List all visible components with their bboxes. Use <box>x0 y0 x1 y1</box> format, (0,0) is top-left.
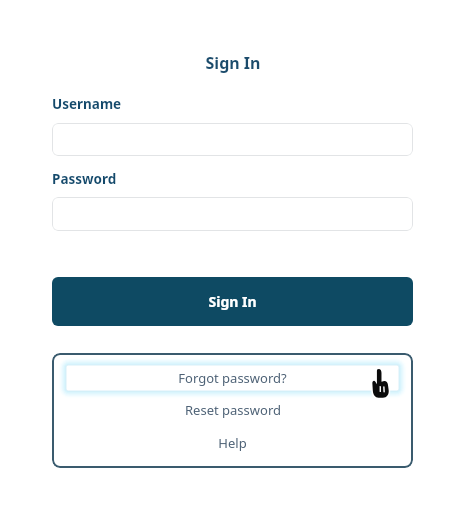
staticText: Help <box>218 434 247 452</box>
button[interactable]: Forgot password? <box>66 365 399 391</box>
staticText: Reset password <box>185 401 281 419</box>
button[interactable]: Username input <box>52 123 413 156</box>
staticText: Username <box>52 95 122 113</box>
button[interactable]: Sign In <box>52 277 413 326</box>
staticText: Password <box>52 170 117 188</box>
button[interactable]: Password input <box>52 197 413 231</box>
staticText: Sign In <box>0 52 466 74</box>
button[interactable]: Reset password <box>52 397 413 423</box>
button[interactable]: Help <box>52 430 413 456</box>
staticText: Forgot password? <box>178 369 287 387</box>
staticText: Sign In <box>208 292 257 311</box>
